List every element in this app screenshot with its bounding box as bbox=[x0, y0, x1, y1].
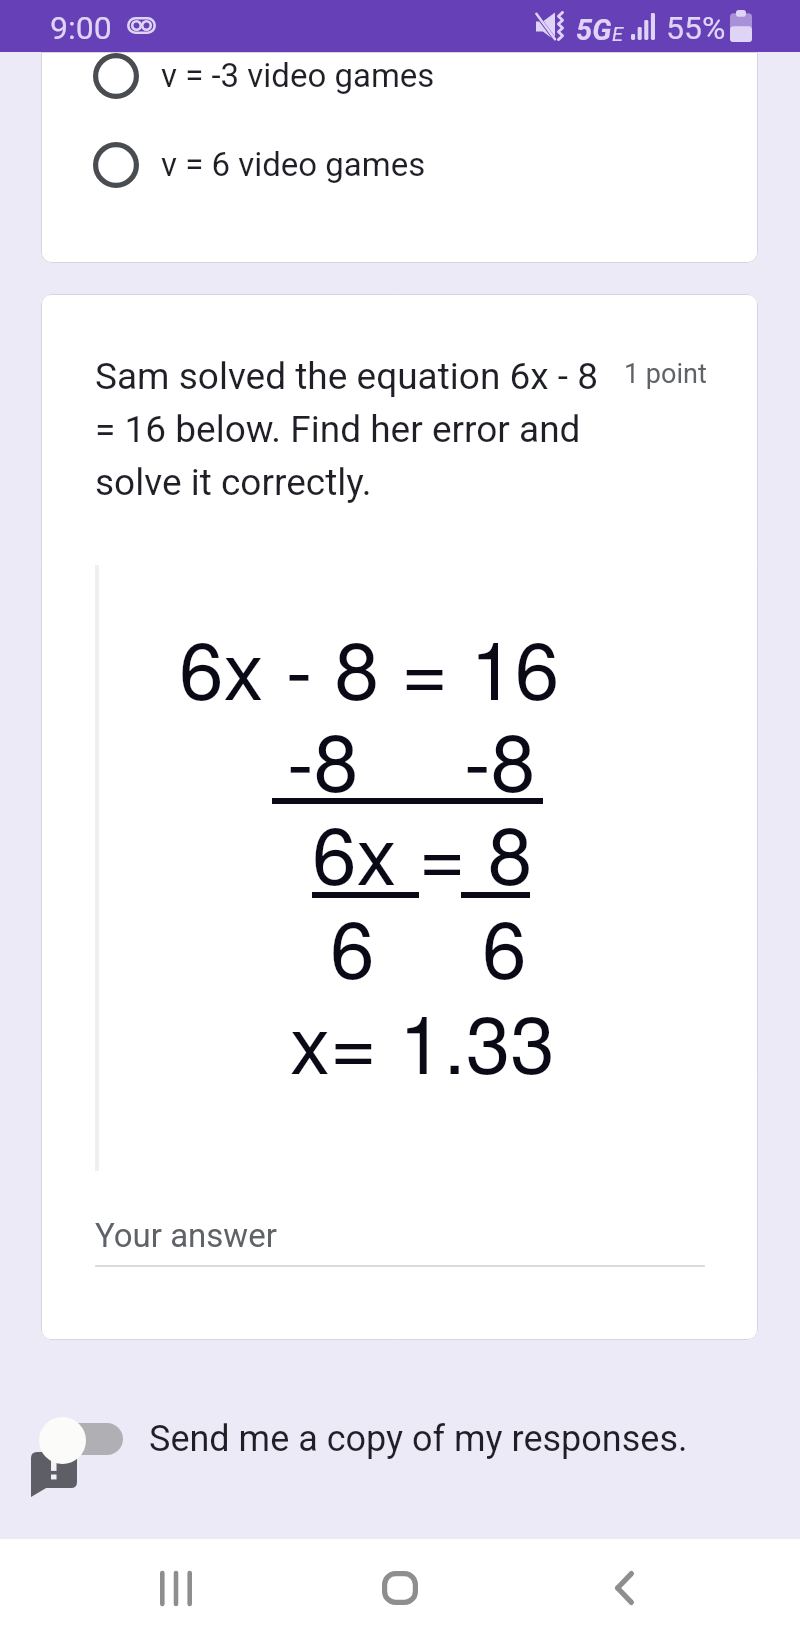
staticText: 6x - 8 = 16 bbox=[179, 608, 560, 723]
button[interactable]: v = -3 video games bbox=[41, 52, 758, 120]
staticText: 1 point bbox=[624, 358, 707, 390]
staticText: E bbox=[612, 22, 624, 45]
staticText: -8 bbox=[287, 700, 359, 815]
staticText: 6 bbox=[482, 887, 527, 1002]
staticText: -8 bbox=[464, 700, 536, 815]
staticText: 9:00 bbox=[50, 9, 112, 47]
button[interactable]: Send me a copy of my responses toggle bbox=[20, 1400, 160, 1500]
staticText: 55% bbox=[666, 9, 726, 47]
staticText: Your answer bbox=[95, 1216, 277, 1255]
button[interactable]: v = 6 video games bbox=[41, 120, 758, 209]
button[interactable]: Back bbox=[574, 1538, 674, 1638]
button[interactable]: Recent apps bbox=[126, 1538, 226, 1638]
staticText: 5G bbox=[576, 13, 612, 47]
staticText: v = 6 video games bbox=[161, 145, 426, 184]
staticText: x= 1.33 bbox=[290, 982, 555, 1097]
staticText: Sam solved the equation 6x - 8 = 16 belo… bbox=[95, 355, 599, 504]
staticText: 6x = 8 bbox=[312, 793, 533, 908]
staticText: 6 bbox=[330, 887, 375, 1002]
staticText: v = -3 video games bbox=[161, 56, 435, 95]
staticText: Send me a copy of my responses. bbox=[149, 1418, 688, 1460]
button[interactable]: Home bbox=[350, 1538, 450, 1638]
